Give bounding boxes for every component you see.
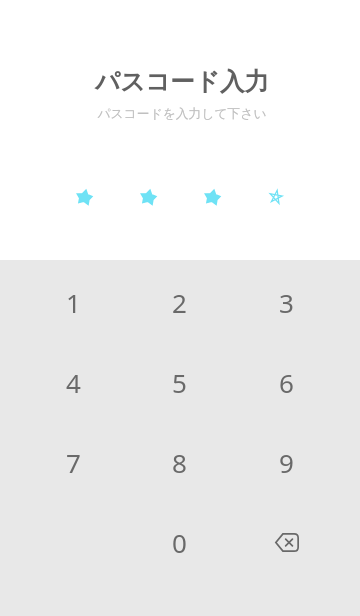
button[interactable]: 8 xyxy=(126,422,233,502)
button[interactable]: 6 xyxy=(233,342,340,422)
staticText: 7 xyxy=(66,445,81,480)
button[interactable]: 2 xyxy=(126,262,233,342)
button[interactable]: 1 xyxy=(20,262,126,342)
staticText: 6 xyxy=(279,365,294,400)
staticText: 8 xyxy=(172,445,187,480)
button[interactable]: 5 xyxy=(126,342,233,422)
button[interactable]: 4 xyxy=(20,342,126,422)
staticText: 1 xyxy=(66,285,81,320)
staticText: 9 xyxy=(279,445,294,480)
button[interactable]: Delete xyxy=(233,502,340,582)
staticText: パスコード入力 xyxy=(95,66,269,97)
staticText: 5 xyxy=(172,365,187,400)
button[interactable]: 3 xyxy=(233,262,340,342)
staticText: 0 xyxy=(172,525,187,560)
staticText: パスコードを入力して下さい xyxy=(97,106,267,122)
button[interactable]: 7 xyxy=(20,422,126,502)
button[interactable]: 9 xyxy=(233,422,340,502)
button[interactable]: 0 xyxy=(126,502,233,582)
staticText: 2 xyxy=(172,285,187,320)
staticText: 4 xyxy=(66,365,81,400)
staticText: 3 xyxy=(279,285,294,320)
